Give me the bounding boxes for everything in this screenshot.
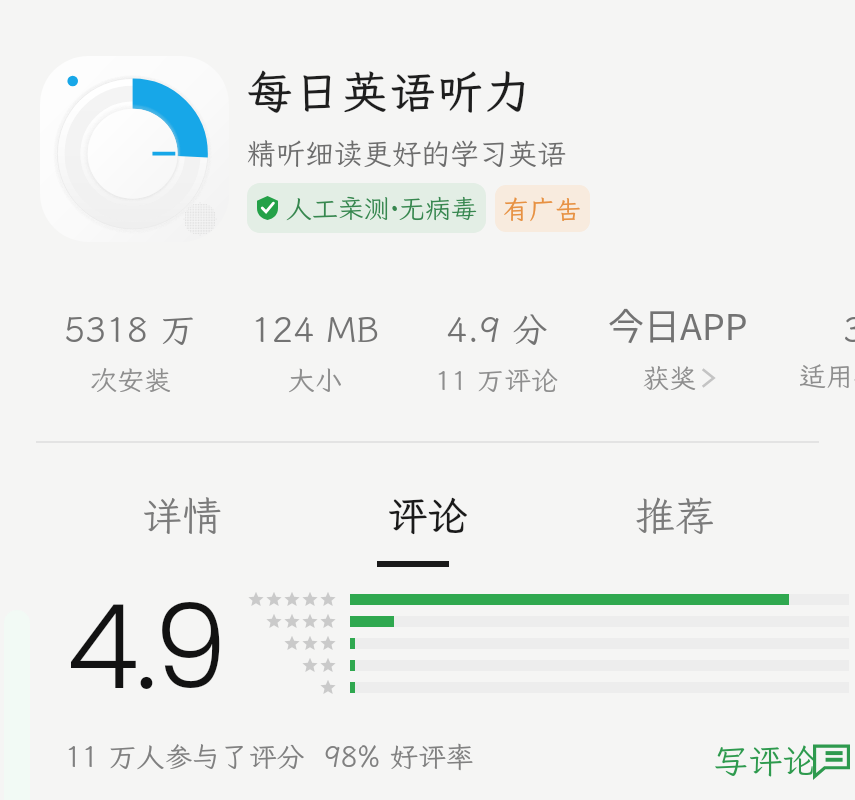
button[interactable]: 有广告 bbox=[495, 185, 590, 232]
staticText: 11 万人参与了评分 98% 好评率 bbox=[65, 738, 474, 775]
staticText: 4.9 分 bbox=[446, 306, 548, 352]
button[interactable]: 详情 bbox=[142, 489, 222, 542]
button[interactable]: 人工亲测·无病毒 bbox=[247, 183, 486, 233]
staticText: 详情 bbox=[142, 489, 222, 542]
staticText: 3.4 版本 bbox=[843, 306, 855, 352]
staticText: 11 万评论 bbox=[435, 362, 558, 398]
staticText: 大小 bbox=[288, 362, 342, 398]
button[interactable]: 写评论 bbox=[711, 731, 851, 791]
staticText: 124 MB bbox=[251, 306, 379, 352]
staticText: 获奖 bbox=[642, 360, 696, 396]
staticText: 人工亲测·无病毒 bbox=[286, 191, 478, 225]
staticText: 5318 万 bbox=[64, 306, 196, 352]
staticText: 适用年龄 bbox=[799, 358, 855, 394]
button[interactable]: 评论 bbox=[387, 489, 467, 542]
staticText: 今日APP bbox=[608, 298, 748, 350]
staticText: 4.9 bbox=[67, 565, 225, 729]
staticText: 写评论 bbox=[714, 738, 816, 783]
staticText: 有广告 bbox=[503, 192, 582, 226]
staticText: 次安装 bbox=[90, 362, 171, 398]
staticText: 每日英语听力 bbox=[247, 62, 533, 121]
button[interactable]: 推荐 bbox=[635, 489, 715, 542]
staticText: 精听细读更好的学习英语 bbox=[247, 134, 567, 172]
staticText: 推荐 bbox=[635, 489, 715, 542]
staticText: 评论 bbox=[387, 489, 467, 542]
